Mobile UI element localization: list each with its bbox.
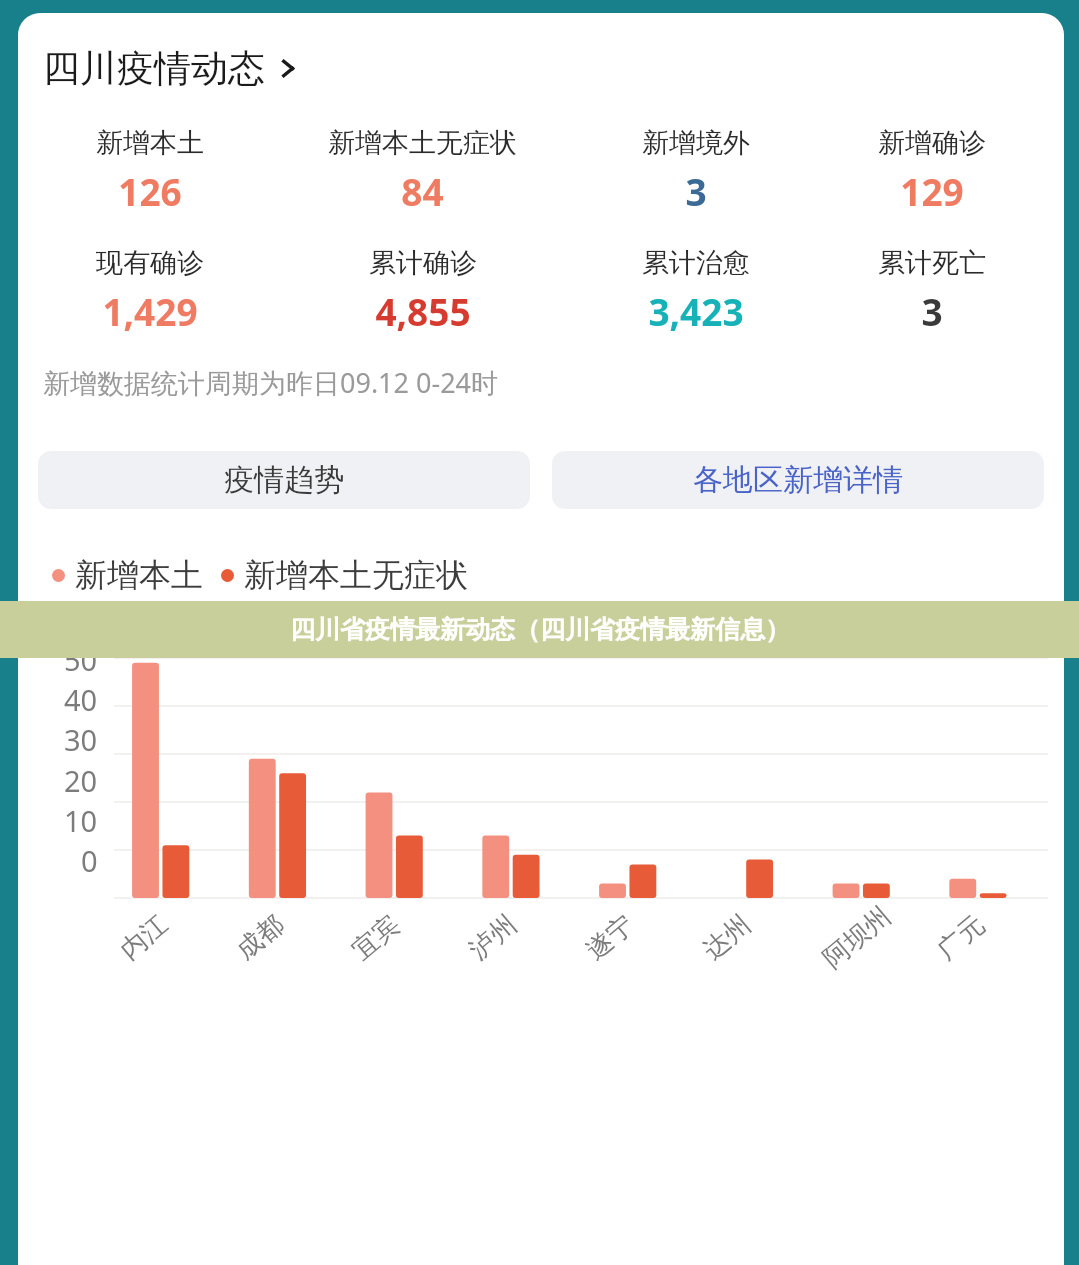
staticText: 3 [685,166,707,216]
staticText: 3 [921,286,943,336]
staticText: 疫情趋势 [224,461,344,499]
staticText: 40 [64,680,98,719]
staticText: 累计治愈 [642,246,750,280]
staticText: 129 [900,166,964,216]
staticText: 遂宁 [579,908,640,967]
staticText: 84 [401,166,444,216]
staticText: 50 [64,640,98,679]
staticText: 现有确诊 [96,246,204,280]
button[interactable]: 各地区新增详情 [552,451,1044,509]
staticText: 20 [64,761,98,800]
staticText: 阿坝州 [816,900,897,975]
staticText: 新增本土 [75,555,203,595]
staticText: 达州 [696,908,757,967]
staticText: 新增本土无症状 [244,555,468,595]
staticText: 累计确诊 [369,246,477,280]
staticText: 126 [118,166,182,216]
staticText: 泸州 [462,908,523,967]
staticText: 四川疫情动态 [43,45,265,92]
button[interactable]: 四川疫情动态 [43,45,298,92]
staticText: 内江 [113,908,174,967]
staticText: 新增境外 [642,126,750,160]
staticText: 四川省疫情最新动态（四川省疫情最新信息） [290,614,790,645]
staticText: 10 [64,801,98,840]
staticText: 1,429 [102,286,198,336]
staticText: 3,423 [648,286,744,336]
staticText: 广元 [930,908,991,967]
button[interactable]: 疫情趋势 [38,451,530,509]
staticText: 新增数据统计周期为昨日09.12 0-24时 [43,364,499,401]
staticText: 新增本土 [96,126,204,160]
staticText: 30 [64,720,98,759]
staticText: 新增本土无症状 [328,126,517,160]
staticText: 各地区新增详情 [693,461,903,499]
staticText: 0 [81,841,98,880]
staticText: 累计死亡 [878,246,986,280]
staticText: 新增确诊 [878,126,986,160]
staticText: 成都 [229,908,290,967]
staticText: 4,855 [375,286,471,336]
staticText: 宜宾 [345,908,406,967]
